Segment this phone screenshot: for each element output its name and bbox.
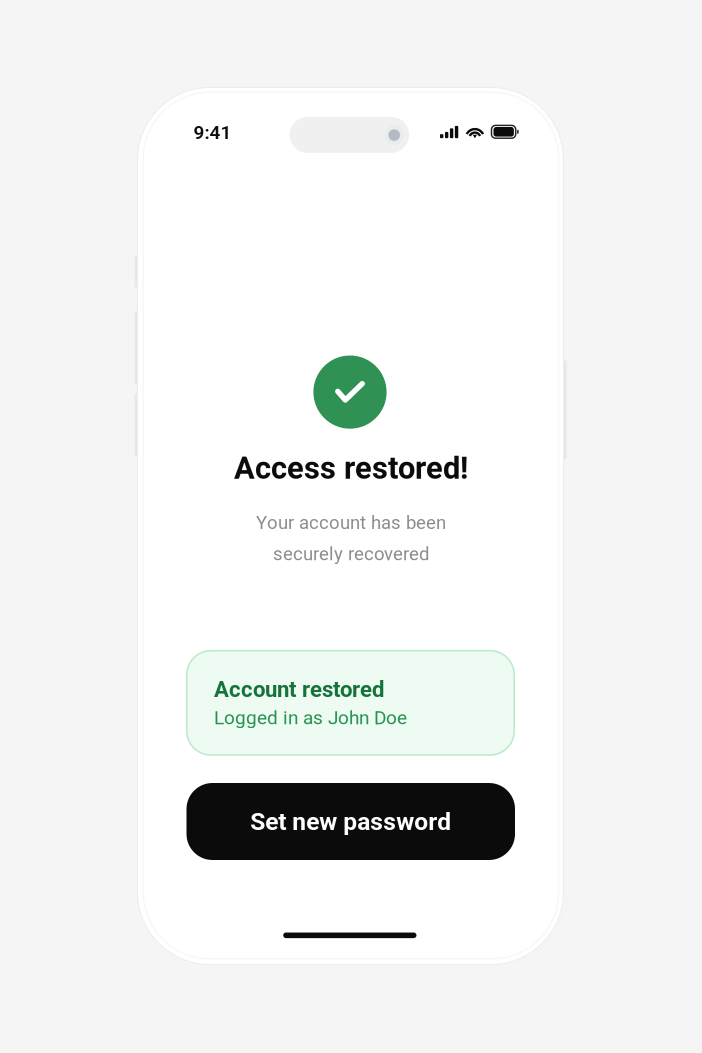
staticText: 9:41 [194,121,232,144]
staticText: Your account has been [256,512,446,533]
staticText: Access restored! [234,450,468,486]
staticText: Set new password [250,807,451,836]
staticText: Account restored [214,676,384,702]
staticText: Logged in as John Doe [214,707,407,729]
staticText: securely recovered [273,543,429,565]
button[interactable]: Set new password [186,783,515,860]
